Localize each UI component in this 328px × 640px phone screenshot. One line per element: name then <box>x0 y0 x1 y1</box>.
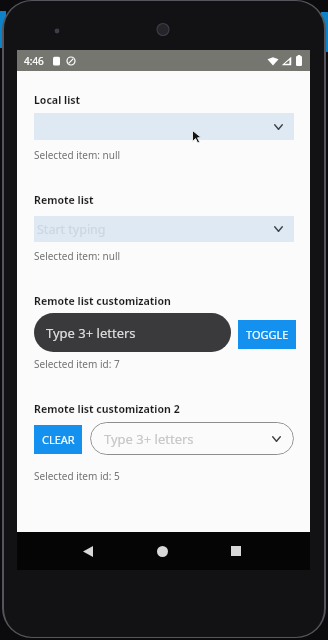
button[interactable]: Type 3+ letters <box>34 313 231 352</box>
staticText: Selected item: null <box>34 249 121 263</box>
button[interactable]: Start typing <box>34 216 294 242</box>
staticText: Local list <box>34 93 81 107</box>
staticText: Selected item id: 5 <box>34 469 120 483</box>
staticText: 4:46 <box>24 54 44 68</box>
staticText: Remote list customization 2 <box>34 402 180 416</box>
button[interactable]: Recents <box>219 534 253 568</box>
staticText: Remote list <box>34 193 94 207</box>
staticText: CLEAR <box>42 432 75 447</box>
button[interactable]: CLEAR <box>34 425 82 454</box>
staticText: Type 3+ letters <box>104 430 194 448</box>
button[interactable]: TOGGLE <box>238 320 296 349</box>
staticText: TOGGLE <box>246 327 289 342</box>
button[interactable]: Type 3+ letters <box>90 422 294 455</box>
button[interactable]: Back <box>71 534 105 568</box>
staticText: Start typing <box>37 221 106 238</box>
staticText: Type 3+ letters <box>46 324 136 342</box>
button[interactable] <box>34 113 294 140</box>
button[interactable]: Home <box>145 534 179 568</box>
staticText: Remote list customization <box>34 294 171 308</box>
staticText: Selected item: null <box>34 148 121 162</box>
staticText: Selected item id: 7 <box>34 357 120 371</box>
